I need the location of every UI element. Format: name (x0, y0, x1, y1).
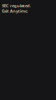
staticText: Exit Anytime. (2, 8, 28, 14)
staticText: SEC regulated. (2, 3, 31, 8)
